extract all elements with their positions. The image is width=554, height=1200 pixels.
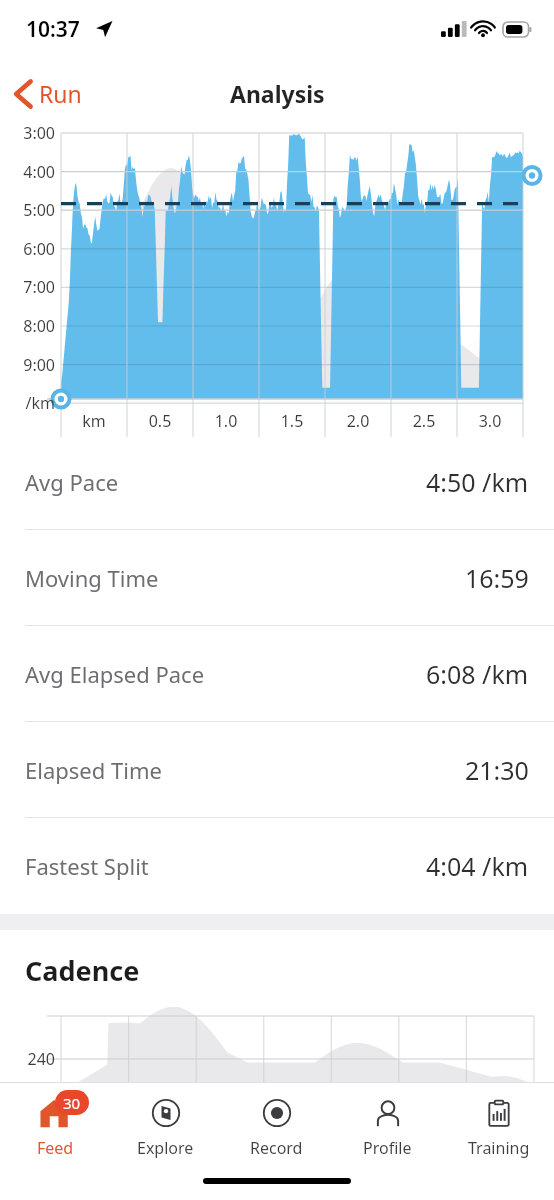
button[interactable]: Explore <box>110 1083 221 1165</box>
staticText: 3:00 <box>0 122 55 144</box>
staticText: Avg Pace <box>25 467 119 497</box>
staticText: 4:04 /km <box>426 849 529 883</box>
staticText: Fastest Split <box>25 851 149 881</box>
button[interactable]: Training <box>443 1083 554 1165</box>
button[interactable]: Profile <box>332 1083 443 1165</box>
staticText: Avg Elapsed Pace <box>25 659 205 689</box>
staticText: 2.5 <box>394 410 454 432</box>
button[interactable]: Elapsed Time <box>0 722 554 817</box>
staticText: 8:00 <box>0 315 55 337</box>
staticText: Explore <box>137 1137 194 1159</box>
staticText: km <box>64 410 124 432</box>
staticText: 1.0 <box>196 410 256 432</box>
staticText: Profile <box>363 1137 412 1159</box>
button[interactable]: Fastest Split <box>0 818 554 913</box>
staticText: Cadence <box>25 952 140 989</box>
staticText: Record <box>250 1137 303 1159</box>
staticText: 21:30 <box>465 753 529 787</box>
staticText: 3.0 <box>460 410 520 432</box>
staticText: 5:00 <box>0 199 55 221</box>
button[interactable]: Avg Pace <box>0 434 554 529</box>
staticText: 6:08 /km <box>426 657 529 691</box>
button[interactable]: 30 <box>0 1083 110 1165</box>
staticText: Feed <box>37 1137 74 1159</box>
staticText: 4:00 <box>0 161 55 183</box>
staticText: 2.0 <box>328 410 388 432</box>
staticText: 1.5 <box>262 410 322 432</box>
staticText: 9:00 <box>0 354 55 376</box>
button[interactable]: Avg Elapsed Pace <box>0 626 554 721</box>
staticText: Training <box>468 1137 530 1159</box>
staticText: /km <box>0 392 55 414</box>
staticText: Analysis <box>230 78 325 109</box>
staticText: Run <box>39 78 82 109</box>
button[interactable]: Moving Time <box>0 530 554 625</box>
staticText: 16:59 <box>465 561 529 595</box>
staticText: 0.5 <box>130 410 190 432</box>
staticText: Moving Time <box>25 563 159 593</box>
staticText: 30 <box>63 1093 81 1113</box>
staticText: Elapsed Time <box>25 755 162 785</box>
button[interactable]: Record <box>221 1083 332 1165</box>
button[interactable]: Run <box>0 72 96 115</box>
staticText: 4:50 /km <box>426 465 529 499</box>
staticText: 10:37 <box>26 15 80 44</box>
staticText: 6:00 <box>0 238 55 260</box>
staticText: 7:00 <box>0 276 55 298</box>
staticText: 240 <box>0 1048 55 1070</box>
